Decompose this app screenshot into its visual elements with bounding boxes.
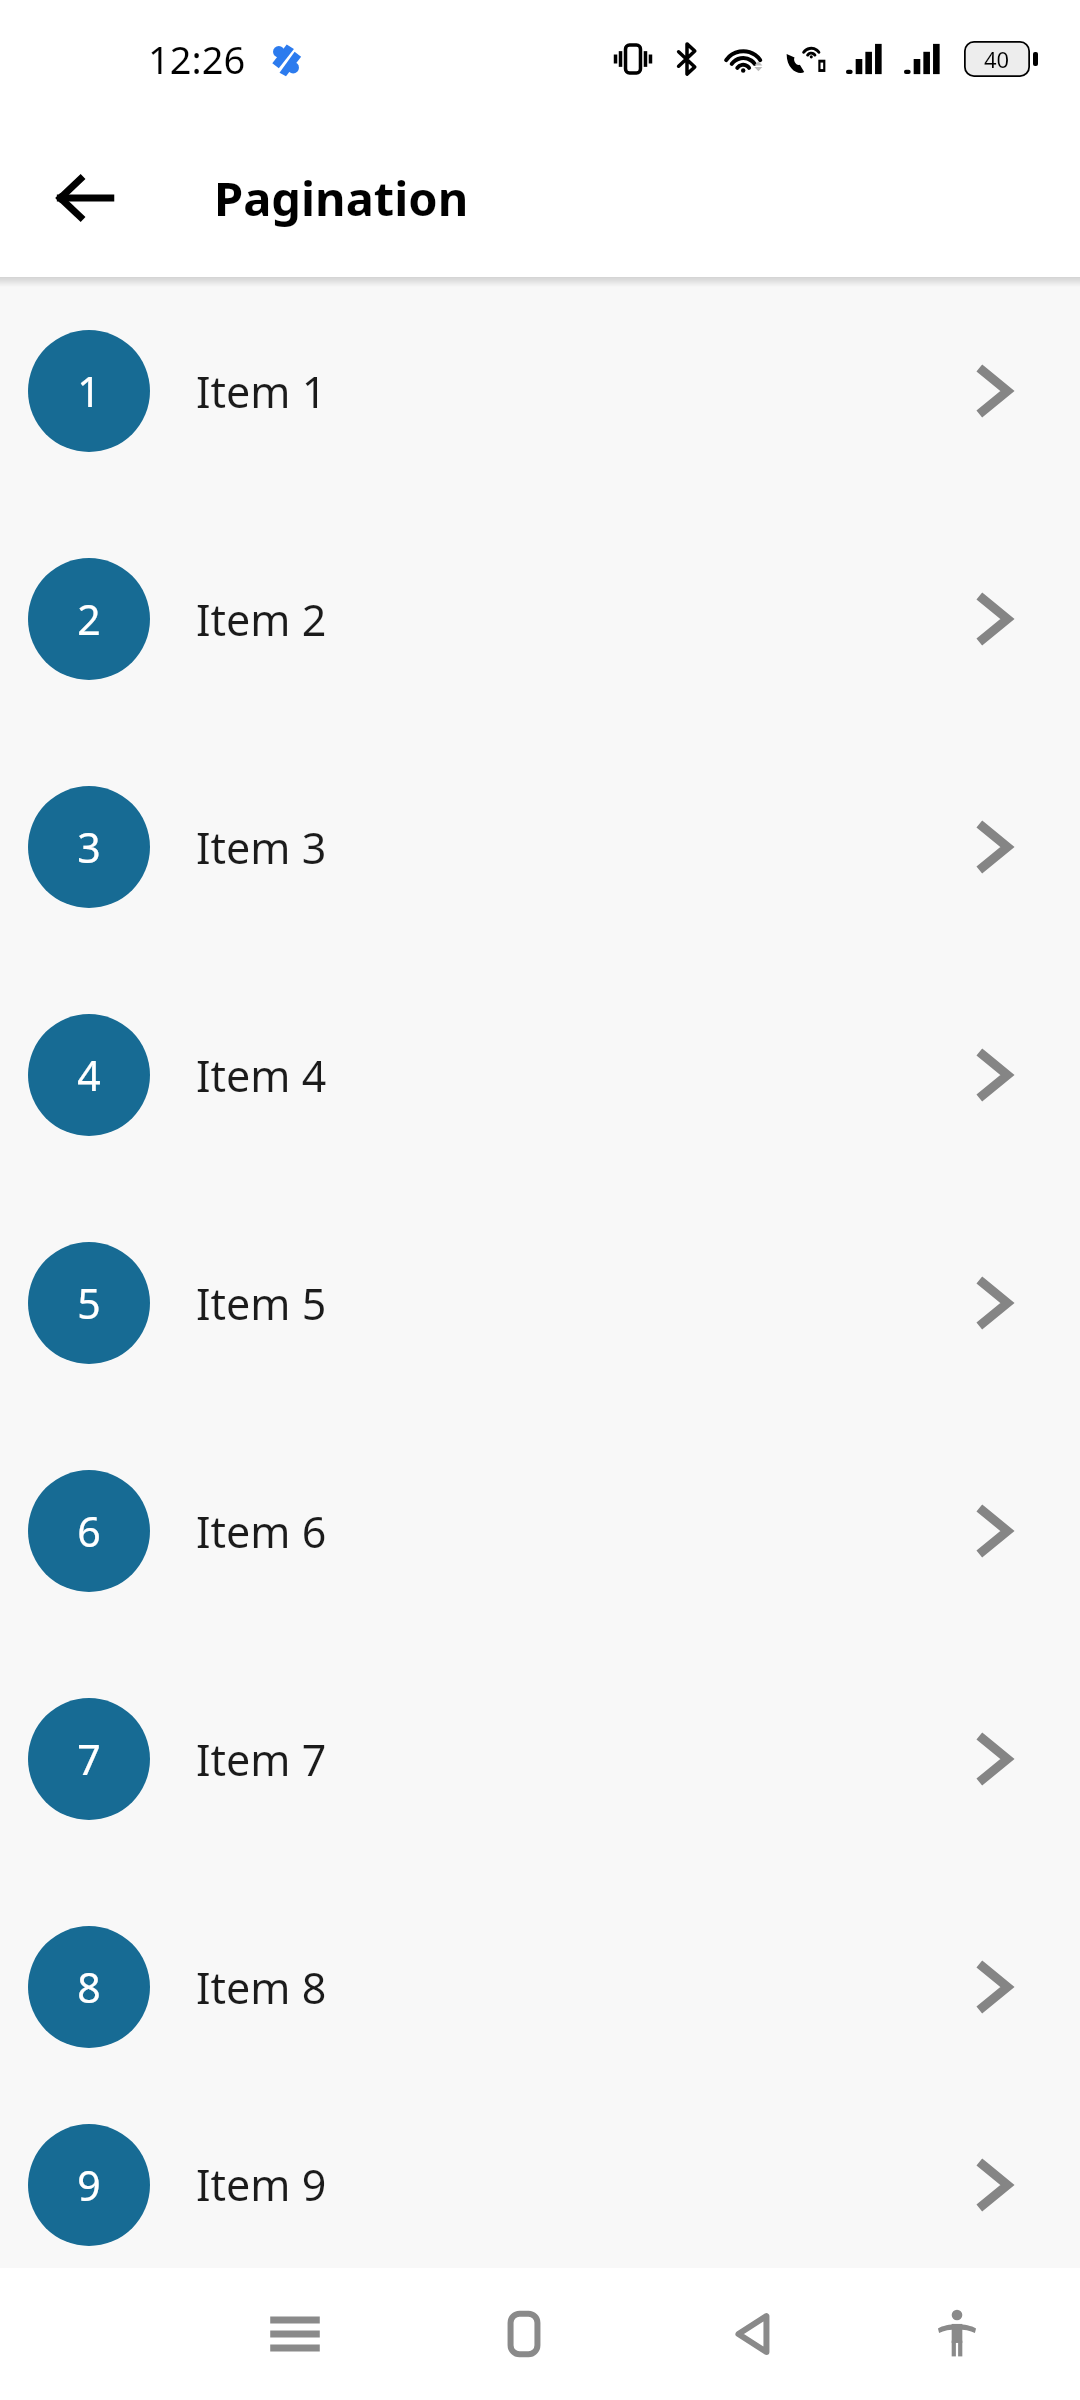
staticText: Item 7 [196, 1730, 966, 1789]
other: Open item 6 [966, 1503, 1022, 1559]
other: Open item 4 [966, 1047, 1022, 1103]
other: Open item 2 [966, 591, 1022, 647]
button[interactable]: 5 [0, 1189, 1080, 1417]
button[interactable]: 3 [0, 733, 1080, 961]
staticText: Item 6 [196, 1502, 966, 1561]
button[interactable]: 4 [0, 961, 1080, 1189]
staticText: Item 3 [196, 818, 966, 877]
staticText: 1 [77, 363, 101, 419]
other: Open item 3 [966, 819, 1022, 875]
staticText: Item 9 [196, 2155, 966, 2214]
button[interactable]: Accessibility [867, 2268, 1046, 2400]
staticText: 40 [984, 44, 1010, 74]
staticText: Item 1 [196, 362, 966, 421]
staticText: Item 2 [196, 590, 966, 649]
button[interactable]: 9 [0, 2101, 1080, 2268]
staticText: Item 4 [196, 1046, 966, 1105]
other: Open item 9 [966, 2157, 1022, 2213]
button[interactable]: 2 [0, 505, 1080, 733]
other: Open item 5 [966, 1275, 1022, 1331]
button[interactable]: 8 [0, 1873, 1080, 2101]
button[interactable]: Back [30, 143, 140, 253]
other: Open item 8 [966, 1959, 1022, 2015]
staticText: 4 [77, 1047, 101, 1103]
staticText: Item 8 [196, 1958, 966, 2017]
other: Open item 1 [966, 363, 1022, 419]
staticText: 9 [77, 2157, 101, 2213]
staticText: 5 [77, 1275, 101, 1331]
staticText: 12:26 [148, 33, 246, 85]
staticText: Item 5 [196, 1274, 966, 1333]
button[interactable]: 1 [0, 277, 1080, 505]
button[interactable]: 6 [0, 1417, 1080, 1645]
staticText: 3 [77, 819, 101, 875]
staticText: 6 [77, 1503, 101, 1559]
other: Open item 7 [966, 1731, 1022, 1787]
staticText: 8 [77, 1959, 101, 2015]
button[interactable]: Recent apps [180, 2268, 409, 2400]
staticText: 7 [77, 1731, 101, 1787]
button[interactable]: Home [409, 2268, 638, 2400]
staticText: 2 [77, 591, 101, 647]
staticText: Pagination [214, 166, 469, 230]
button[interactable]: 7 [0, 1645, 1080, 1873]
button[interactable]: Back [638, 2268, 867, 2400]
